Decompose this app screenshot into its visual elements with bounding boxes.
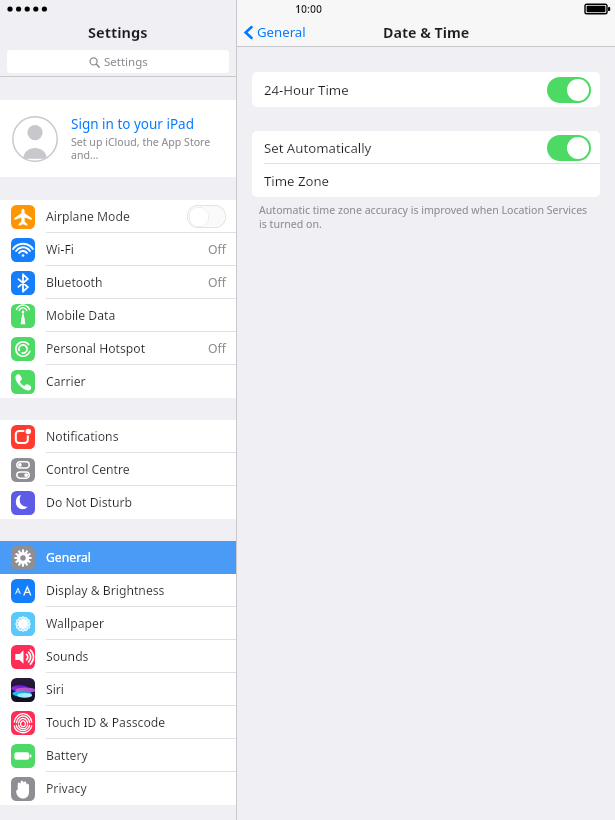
button[interactable]: Siri <box>0 673 236 706</box>
button[interactable]: Wi-Fi <box>0 233 236 266</box>
staticText: Off <box>208 274 226 291</box>
staticText: General <box>46 549 91 566</box>
button[interactable]: Control Centre <box>0 453 236 486</box>
button[interactable]: Do Not Disturb <box>0 486 236 519</box>
button[interactable]: Touch ID & Passcode <box>0 706 236 739</box>
staticText: Personal Hotspot <box>46 340 146 357</box>
button[interactable]: Toggle <box>547 135 591 161</box>
button[interactable]: Bluetooth <box>0 266 236 299</box>
staticText: General <box>257 23 306 41</box>
staticText: Automatic time zone accuracy is improved… <box>259 203 593 231</box>
button[interactable]: Time Zone <box>252 164 600 197</box>
staticText: Off <box>208 340 226 357</box>
button[interactable]: Carrier <box>0 365 236 398</box>
staticText: Set up iCloud, the App Store and… <box>71 135 236 163</box>
staticText: Display & Brightness <box>46 582 165 599</box>
staticText: Settings <box>104 54 148 70</box>
staticText: Do Not Disturb <box>46 494 132 511</box>
button[interactable]: Privacy <box>0 772 236 805</box>
button[interactable]: Mobile Data <box>0 299 236 332</box>
staticText: Control Centre <box>46 461 130 478</box>
button[interactable]: 24-Hour Time <box>252 72 600 107</box>
button[interactable]: General <box>243 23 306 41</box>
staticText: Date & Time <box>383 23 470 42</box>
button[interactable]: Wallpaper <box>0 607 236 640</box>
button[interactable]: Battery <box>0 739 236 772</box>
staticText: Set Automatically <box>264 139 547 157</box>
staticText: 10:00 <box>295 2 322 16</box>
staticText: 24-Hour Time <box>264 81 547 99</box>
staticText: Off <box>208 241 226 258</box>
button[interactable]: Display & Brightness <box>0 574 236 607</box>
staticText: Notifications <box>46 428 119 445</box>
staticText: Sign in to your iPad <box>71 115 194 133</box>
button[interactable]: Notifications <box>0 420 236 453</box>
staticText: Bluetooth <box>46 274 103 291</box>
staticText: Touch ID & Passcode <box>46 714 166 731</box>
button[interactable]: Sounds <box>0 640 236 673</box>
staticText: Carrier <box>46 373 86 390</box>
button[interactable]: Sign in to your iPad <box>0 100 236 177</box>
staticText: Mobile Data <box>46 307 116 324</box>
button[interactable]: Personal Hotspot <box>0 332 236 365</box>
button[interactable]: Settings <box>7 50 229 73</box>
staticText: Battery <box>46 747 88 764</box>
staticText: Sounds <box>46 648 89 665</box>
button[interactable]: General <box>0 541 236 574</box>
staticText: Wallpaper <box>46 615 104 632</box>
button[interactable]: Toggle <box>187 205 226 228</box>
staticText: Siri <box>46 681 65 698</box>
button[interactable]: Toggle <box>547 77 591 103</box>
button[interactable]: Airplane Mode <box>0 200 236 233</box>
staticText: Privacy <box>46 780 87 797</box>
button[interactable]: Set Automatically <box>252 131 600 164</box>
staticText: Time Zone <box>264 172 330 190</box>
staticText: Wi-Fi <box>46 241 74 258</box>
staticText: Settings <box>88 22 148 42</box>
staticText: Airplane Mode <box>46 208 130 225</box>
